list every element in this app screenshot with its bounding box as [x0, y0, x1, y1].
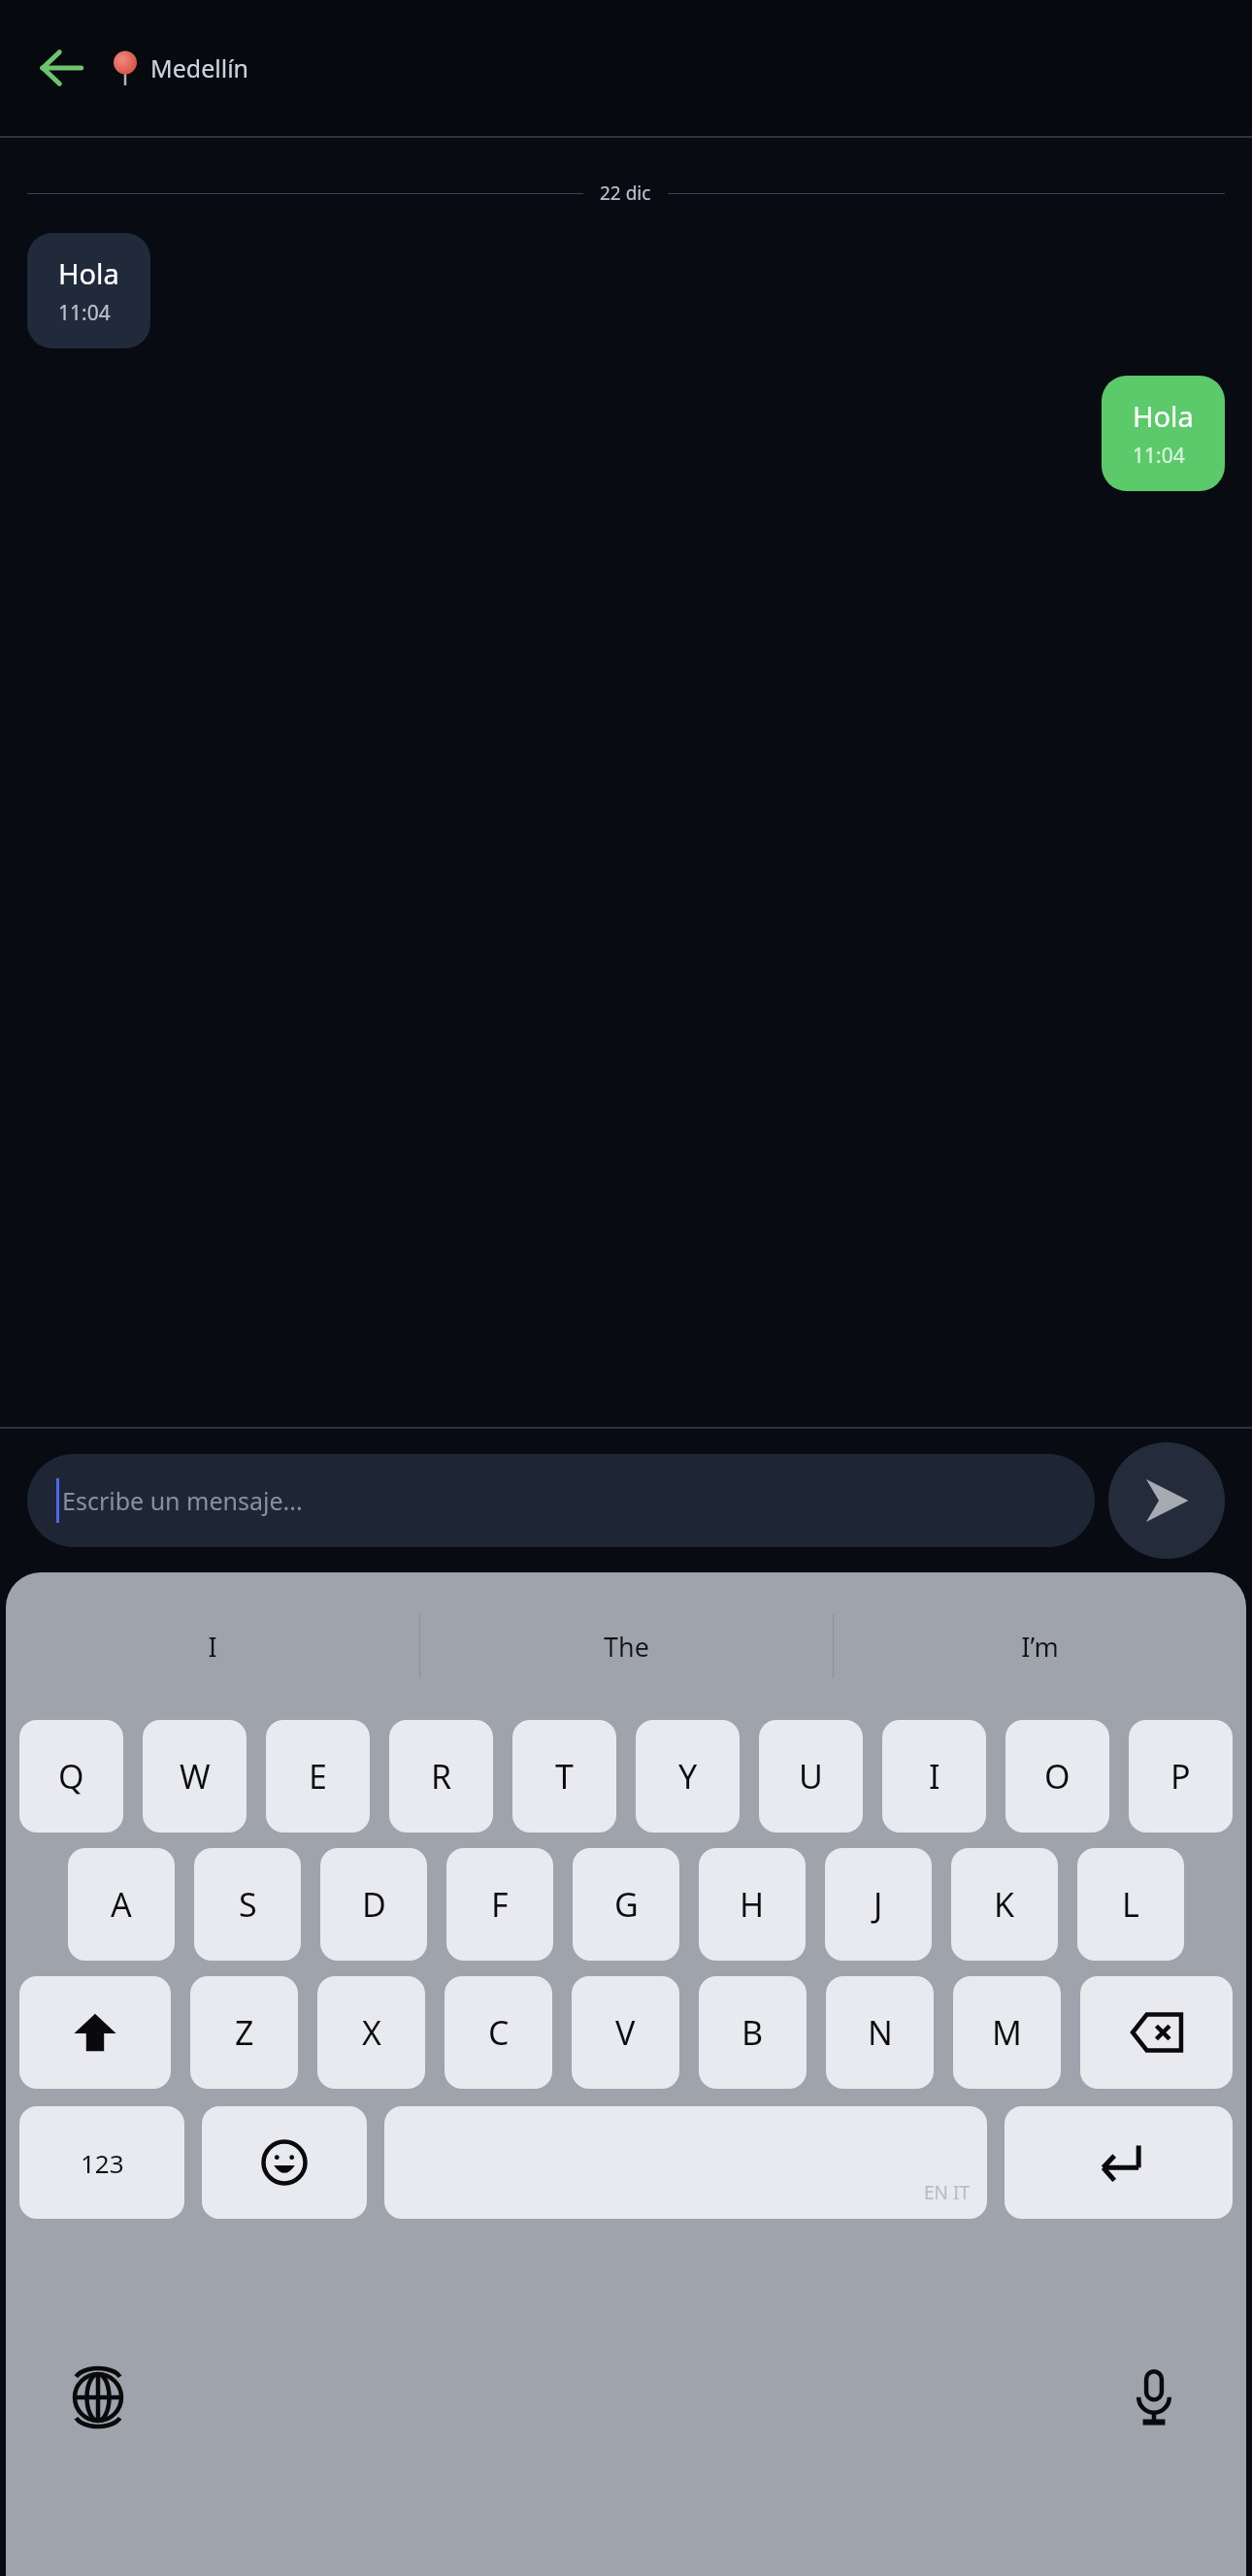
button[interactable]: P — [1129, 1720, 1233, 1833]
staticText: H — [740, 1882, 765, 1927]
staticText: O — [1044, 1754, 1071, 1799]
button[interactable]: S — [194, 1848, 301, 1961]
button[interactable]: O — [1005, 1720, 1109, 1833]
staticText: Hola — [1133, 397, 1194, 435]
button[interactable]: Medellín — [113, 50, 249, 85]
button[interactable]: Voice input — [1110, 2354, 1198, 2441]
staticText: B — [741, 2010, 764, 2055]
button[interactable]: I’m — [834, 1572, 1246, 1720]
button[interactable]: Emoji — [202, 2106, 367, 2219]
button[interactable]: F — [446, 1848, 553, 1961]
staticText: 11:04 — [58, 299, 111, 327]
staticText: W — [180, 1754, 211, 1799]
staticText: 22 dic — [600, 181, 651, 206]
button[interactable]: Y — [636, 1720, 740, 1833]
staticText: A — [111, 1882, 132, 1927]
staticText: M — [992, 2010, 1022, 2055]
staticText: E — [309, 1754, 327, 1799]
staticText: EN IT — [924, 2180, 970, 2205]
button[interactable]: B — [699, 1976, 807, 2089]
staticText: K — [994, 1882, 1015, 1927]
button[interactable]: K — [951, 1848, 1058, 1961]
button[interactable]: The — [420, 1572, 833, 1720]
staticText: Q — [58, 1754, 84, 1799]
button[interactable]: C — [445, 1976, 552, 2089]
button[interactable]: E — [266, 1720, 370, 1833]
button[interactable]: Send — [1108, 1442, 1225, 1559]
button[interactable]: Enter — [1005, 2106, 1233, 2219]
button[interactable]: Language — [54, 2354, 142, 2441]
button[interactable]: J — [825, 1848, 932, 1961]
staticText: U — [799, 1754, 823, 1799]
button[interactable]: Backspace — [1080, 1976, 1233, 2089]
staticText: 123 — [81, 2146, 124, 2180]
staticText: J — [873, 1882, 883, 1927]
button[interactable]: L — [1077, 1848, 1184, 1961]
button[interactable]: Q — [19, 1720, 123, 1833]
staticText: I — [208, 1629, 217, 1665]
staticText: R — [431, 1754, 452, 1799]
button[interactable]: T — [512, 1720, 616, 1833]
button[interactable]: W — [143, 1720, 247, 1833]
staticText: I — [929, 1754, 940, 1799]
staticText: 11:04 — [1133, 442, 1185, 470]
button[interactable]: N — [826, 1976, 934, 2089]
staticText: D — [362, 1882, 386, 1927]
button[interactable]: D — [320, 1848, 427, 1961]
button[interactable]: Z — [190, 1976, 298, 2089]
button[interactable]: Space — [384, 2106, 987, 2219]
button[interactable]: Back — [33, 40, 89, 96]
button[interactable]: G — [573, 1848, 679, 1961]
staticText: The — [604, 1629, 649, 1665]
staticText: Z — [235, 2010, 254, 2055]
button[interactable]: I — [6, 1572, 419, 1720]
staticText: S — [239, 1882, 257, 1927]
staticText: Medellín — [150, 51, 249, 84]
button[interactable]: X — [317, 1976, 425, 2089]
button[interactable]: V — [572, 1976, 679, 2089]
button[interactable]: H — [699, 1848, 806, 1961]
staticText: I’m — [1021, 1629, 1059, 1665]
staticText: G — [614, 1882, 639, 1927]
staticText: Escribe un mensaje... — [62, 1484, 303, 1517]
button[interactable]: I — [882, 1720, 986, 1833]
staticText: F — [491, 1882, 509, 1927]
button[interactable]: U — [759, 1720, 863, 1833]
button[interactable]: Escribe un mensaje... — [27, 1454, 1095, 1547]
button[interactable]: R — [389, 1720, 493, 1833]
staticText: X — [362, 2010, 381, 2055]
button[interactable]: A — [68, 1848, 175, 1961]
button[interactable]: Hola — [27, 233, 150, 348]
staticText: Hola — [58, 254, 119, 292]
staticText: C — [488, 2010, 510, 2055]
button[interactable]: 123 — [19, 2106, 184, 2219]
staticText: P — [1170, 1754, 1191, 1799]
staticText: N — [868, 2010, 893, 2055]
button[interactable]: M — [953, 1976, 1061, 2089]
button[interactable]: Shift — [19, 1976, 171, 2089]
staticText: V — [615, 2010, 636, 2055]
staticText: Y — [678, 1754, 698, 1799]
staticText: L — [1122, 1882, 1139, 1927]
staticText: T — [555, 1754, 574, 1799]
button[interactable]: Hola — [1102, 376, 1225, 491]
